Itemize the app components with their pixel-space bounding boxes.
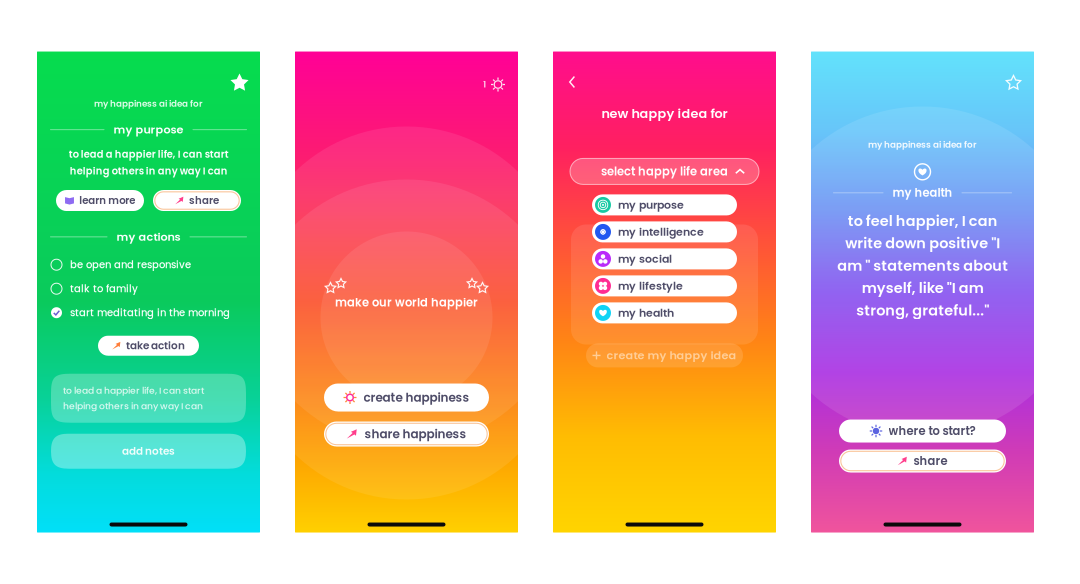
button[interactable]: share <box>153 190 241 211</box>
staticText: new happy idea for <box>601 104 727 122</box>
staticText: add notes <box>122 444 175 458</box>
staticText: my purpose <box>618 197 684 213</box>
button[interactable]: Favourite <box>230 73 249 92</box>
staticText: my health <box>892 185 952 201</box>
button[interactable]: learn more <box>56 190 144 211</box>
staticText: to lead a happier life, I can start help… <box>68 147 228 178</box>
button[interactable]: create happiness <box>324 383 489 411</box>
button[interactable]: talk to family <box>51 282 246 296</box>
button[interactable]: share happiness <box>324 421 489 446</box>
staticText: my purpose <box>113 122 183 137</box>
staticText: select happy life area <box>601 163 728 179</box>
staticText: to feel happier, I can write down positi… <box>837 211 1008 320</box>
staticText: my lifestyle <box>618 278 683 294</box>
button[interactable]: where to start? <box>839 419 1006 442</box>
button[interactable]: my health <box>592 302 737 323</box>
button[interactable]: take action <box>98 336 199 356</box>
button[interactable]: Favourite <box>1006 75 1021 90</box>
staticText: share happiness <box>364 426 466 442</box>
staticText: my happiness ai idea for <box>868 138 977 151</box>
staticText: create my happy idea <box>606 348 736 363</box>
staticText: my intelligence <box>618 224 704 240</box>
staticText: start meditating in the morning <box>70 306 230 320</box>
staticText: my happiness ai idea for <box>94 97 203 110</box>
button[interactable]: add notes <box>51 434 246 469</box>
staticText: make our world happier <box>335 294 478 311</box>
staticText: my actions <box>116 229 180 245</box>
staticText: share <box>189 193 219 208</box>
staticText: share <box>913 453 947 469</box>
button[interactable]: be open and responsive <box>51 258 246 272</box>
staticText: my health <box>618 305 674 321</box>
button[interactable]: my lifestyle <box>592 275 737 296</box>
button[interactable]: share <box>839 449 1006 472</box>
staticText: where to start? <box>888 423 975 439</box>
button[interactable]: start meditating in the morning <box>51 306 246 320</box>
staticText: talk to family <box>70 282 138 296</box>
button[interactable]: select happy life area <box>570 158 759 184</box>
button[interactable]: my social <box>592 248 737 269</box>
staticText: my social <box>618 251 672 267</box>
button[interactable]: my intelligence <box>592 221 737 242</box>
button[interactable]: create my happy idea <box>586 343 743 367</box>
staticText: 1 <box>483 78 486 90</box>
staticText: to feel happier, I can ... <box>592 276 737 293</box>
button[interactable]: my purpose <box>592 194 737 215</box>
staticText: learn more <box>79 193 135 208</box>
staticText: to lead a happier life, I can start help… <box>63 384 204 412</box>
staticText: create happiness <box>363 389 469 406</box>
button[interactable]: Back <box>564 71 580 92</box>
staticText: be open and responsive <box>70 258 191 272</box>
staticText: take action <box>126 338 185 353</box>
